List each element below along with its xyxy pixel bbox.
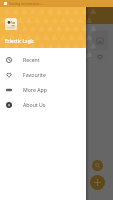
button[interactable]: More App [0, 82, 86, 97]
staticText: Saving screenshot... [9, 1, 43, 6]
button[interactable]: Search [92, 160, 103, 171]
button[interactable] [0, 7, 113, 200]
button[interactable]: Recent [0, 52, 86, 67]
button[interactable] [4, 30, 21, 62]
button[interactable]: Open navigation drawer [4, 12, 12, 20]
staticText: Eclectic Logic [5, 38, 35, 44]
staticText: About Us [23, 101, 46, 108]
button[interactable] [25, 30, 43, 62]
button[interactable]: Add [90, 175, 105, 190]
button[interactable]: About Us [0, 97, 86, 112]
button[interactable]: Favourite [0, 67, 86, 82]
button[interactable] [47, 30, 65, 62]
staticText: Recent [23, 56, 40, 63]
staticText: Favourite [23, 71, 46, 78]
button[interactable] [91, 30, 109, 62]
staticText: Eclectic Logic [17, 12, 52, 19]
button[interactable] [69, 30, 87, 62]
staticText: More App [23, 86, 47, 93]
